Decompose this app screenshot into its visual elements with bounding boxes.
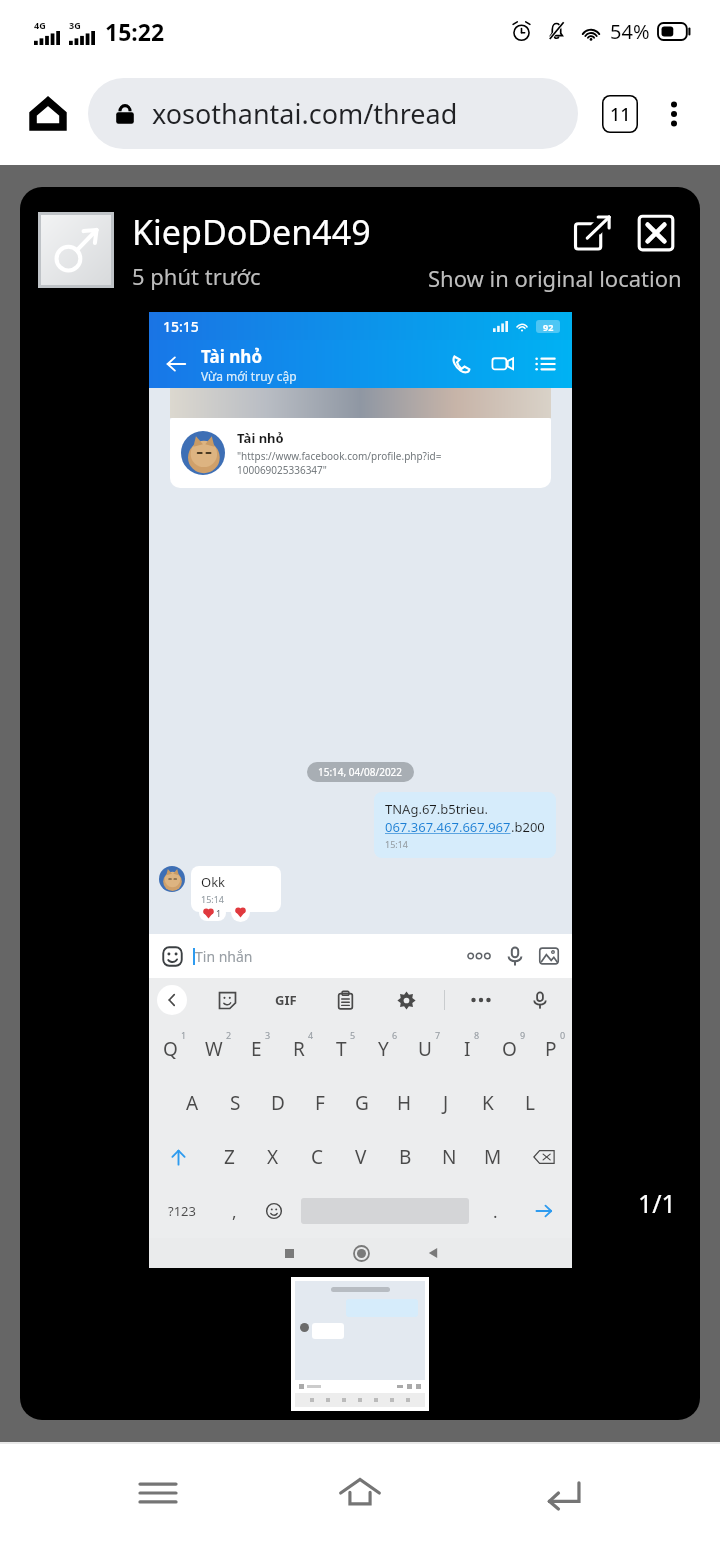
staticText: R <box>293 1036 305 1062</box>
button[interactable]: Voice call <box>444 347 478 381</box>
button[interactable]: Recents <box>113 1448 203 1538</box>
staticText: G <box>355 1090 369 1116</box>
button[interactable]: Okk <box>191 866 281 912</box>
button[interactable]: Enter <box>515 1184 572 1238</box>
button[interactable]: Backspace <box>515 1130 572 1184</box>
button[interactable]: Recents <box>267 1238 311 1268</box>
button[interactable]: Open in new window <box>568 207 620 259</box>
button[interactable]: Tabs: 11 <box>592 86 648 142</box>
staticText: N <box>442 1144 457 1170</box>
button[interactable]: Z <box>207 1130 251 1184</box>
button[interactable]: Back <box>518 1448 608 1538</box>
staticText: Okk <box>201 873 226 891</box>
staticText: D <box>271 1090 285 1116</box>
staticText: 15:15 <box>163 317 199 336</box>
staticText: 8 <box>474 1029 480 1041</box>
button[interactable]: Shift <box>149 1130 207 1184</box>
staticText: 4 <box>308 1029 314 1041</box>
staticText: Q <box>163 1036 178 1062</box>
staticText: 5 phút trước <box>132 261 261 291</box>
button[interactable]: G <box>341 1076 383 1130</box>
button[interactable]: TNAg.67.b5trieu. <box>374 792 556 858</box>
button[interactable]: P <box>530 1022 572 1076</box>
staticText: 067.367.467.667.967 <box>385 818 511 836</box>
button[interactable]: X <box>251 1130 295 1184</box>
button[interactable]: Show in original location <box>428 263 682 293</box>
staticText: H <box>397 1090 412 1116</box>
button[interactable]: V <box>339 1130 383 1184</box>
button[interactable]: Voice message <box>502 943 528 969</box>
button[interactable]: Home <box>339 1238 383 1268</box>
button[interactable]: Back <box>159 347 193 381</box>
button[interactable]: GIF <box>275 991 297 1009</box>
button[interactable]: S <box>214 1076 257 1130</box>
button[interactable]: Settings <box>393 987 419 1013</box>
staticText: A <box>186 1090 199 1116</box>
button[interactable]: Tài nhỏ <box>170 418 551 488</box>
button[interactable]: A <box>171 1076 214 1130</box>
button[interactable]: , <box>215 1184 254 1238</box>
button[interactable]: N <box>427 1130 471 1184</box>
button[interactable]: W <box>192 1022 235 1076</box>
staticText: 6 <box>392 1029 398 1041</box>
button[interactable]: H <box>383 1076 425 1130</box>
button[interactable]: Gallery <box>536 943 562 969</box>
staticText: 5 <box>350 1029 356 1041</box>
staticText: F <box>315 1090 325 1116</box>
button[interactable]: C <box>295 1130 339 1184</box>
button[interactable]: ?123 <box>149 1184 215 1238</box>
button[interactable]: U <box>404 1022 446 1076</box>
button[interactable]: Close <box>630 207 682 259</box>
button[interactable]: xosothantai.com/thread <box>88 78 578 149</box>
button[interactable]: Home <box>20 86 76 142</box>
button[interactable]: Q <box>149 1022 192 1076</box>
button[interactable]: R <box>278 1022 320 1076</box>
button[interactable]: E <box>235 1022 278 1076</box>
button[interactable]: Video call <box>486 347 520 381</box>
button[interactable]: Clipboard <box>332 987 358 1013</box>
button[interactable]: . <box>476 1184 515 1238</box>
staticText: J <box>443 1090 449 1116</box>
button[interactable]: Home <box>315 1448 405 1538</box>
button[interactable]: O <box>488 1022 530 1076</box>
button[interactable] <box>470 995 492 1005</box>
staticText: 15:14 <box>385 838 409 850</box>
button[interactable]: Menu <box>528 347 562 381</box>
button[interactable]: Stickers <box>214 987 240 1013</box>
staticText: 1 <box>181 1029 187 1041</box>
staticText: . <box>493 1200 498 1223</box>
staticText: Z <box>224 1144 235 1170</box>
staticText: 3G <box>69 19 81 31</box>
button[interactable]: T <box>320 1022 362 1076</box>
button[interactable]: L <box>509 1076 551 1130</box>
staticText: O <box>502 1036 517 1062</box>
button[interactable]: D <box>257 1076 299 1130</box>
button[interactable]: Y <box>362 1022 404 1076</box>
button[interactable]: Collapse toolbar <box>157 985 187 1015</box>
staticText: I <box>464 1036 471 1062</box>
staticText: 2 <box>226 1029 232 1041</box>
button[interactable]: More options <box>648 88 700 140</box>
staticText: 7 <box>435 1029 441 1041</box>
button[interactable]: Sticker <box>159 943 185 969</box>
button[interactable] <box>466 950 492 962</box>
button[interactable]: Back <box>411 1238 455 1268</box>
staticText: 15:14 <box>201 893 225 905</box>
staticText: TNAg.67.b5trieu. <box>385 800 488 818</box>
button[interactable]: B <box>383 1130 427 1184</box>
button[interactable]: Voice input <box>527 987 553 1013</box>
button[interactable]: J <box>425 1076 467 1130</box>
staticText: W <box>205 1036 223 1062</box>
staticText: V <box>355 1144 367 1170</box>
button[interactable]: M <box>471 1130 515 1184</box>
staticText: T <box>336 1036 347 1062</box>
button[interactable]: Emoji <box>254 1184 293 1238</box>
staticText: ?123 <box>168 1202 196 1220</box>
staticText: Vừa mới truy cập <box>201 368 297 384</box>
staticText: U <box>418 1036 432 1062</box>
button[interactable]: F <box>299 1076 341 1130</box>
button[interactable]: Space <box>293 1184 476 1238</box>
button[interactable]: I <box>446 1022 488 1076</box>
button[interactable]: Image 1 thumbnail <box>295 1281 425 1407</box>
button[interactable]: K <box>467 1076 509 1130</box>
